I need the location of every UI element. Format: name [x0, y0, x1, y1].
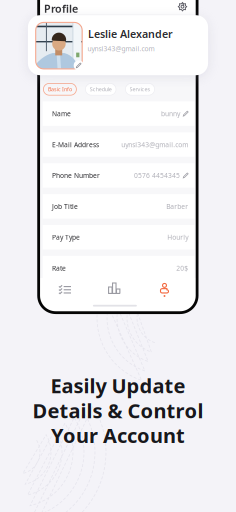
button[interactable]: Schedule: [85, 83, 116, 95]
button[interactable]: Settings: [175, 0, 189, 14]
button[interactable]: Profile: [44, 2, 78, 16]
staticText: Leslie Alexander: [88, 27, 173, 41]
staticText: 20$: [176, 264, 188, 273]
staticText: bunny: [161, 109, 180, 118]
button[interactable]: Statistics: [104, 280, 124, 296]
staticText: Hourly: [167, 233, 188, 242]
staticText: Your Account: [51, 422, 185, 448]
staticText: Schedule: [90, 86, 112, 93]
button[interactable]: Rate: [43, 256, 194, 280]
button[interactable]: Name: [43, 101, 194, 126]
staticText: 0576 4454345: [134, 171, 180, 180]
staticText: uynsl343@gmail.com: [87, 44, 154, 53]
staticText: Rate: [52, 264, 66, 273]
button[interactable]: Services: [125, 83, 155, 95]
staticText: Phone Number: [52, 171, 100, 180]
staticText: uynsl343@gmail.com: [121, 140, 188, 149]
staticText: Basic Info: [48, 86, 72, 93]
staticText: Profile: [44, 2, 78, 16]
button[interactable]: Tasks: [55, 282, 75, 298]
staticText: Easily Update: [50, 372, 185, 399]
button[interactable]: Profile: [154, 281, 174, 299]
button[interactable]: Pay Type: [43, 225, 194, 249]
staticText: Job Title: [52, 202, 78, 211]
button[interactable]: Job Title: [43, 194, 194, 219]
staticText: Barber: [166, 202, 188, 211]
button[interactable]: Phone Number: [43, 163, 194, 188]
staticText: Name: [52, 109, 71, 118]
button[interactable]: E-Mail Address: [43, 132, 194, 157]
staticText: Details & Control: [32, 397, 203, 424]
staticText: E-Mail Address: [52, 140, 99, 149]
button[interactable]: Basic Info: [43, 83, 76, 95]
staticText: Services: [129, 86, 150, 93]
staticText: Pay Type: [52, 233, 80, 242]
